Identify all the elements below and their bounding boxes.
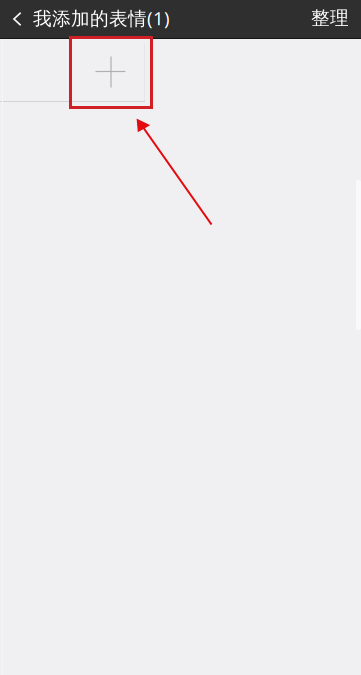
button[interactable]: Back: [0, 0, 33, 38]
button[interactable]: 整理: [297, 0, 361, 38]
button[interactable]: Add sticker: [72, 39, 145, 101]
staticText: 整理: [311, 6, 349, 29]
staticText: 我添加的表情(1): [33, 6, 170, 30]
button[interactable]: Sticker: [0, 39, 72, 101]
